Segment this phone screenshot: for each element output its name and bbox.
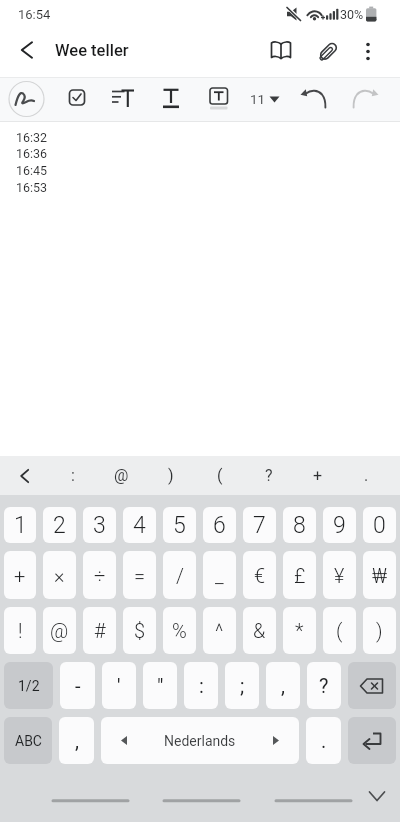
staticText: _ <box>215 564 224 587</box>
button[interactable] <box>10 36 46 72</box>
button[interactable]: 0 <box>363 507 396 543</box>
button[interactable] <box>311 34 347 70</box>
button[interactable]: ; <box>225 662 259 709</box>
staticText: , <box>281 674 285 697</box>
button[interactable] <box>105 81 143 118</box>
button[interactable]: ₩ <box>363 551 396 599</box>
button[interactable] <box>358 781 396 813</box>
button[interactable]: × <box>43 551 76 599</box>
button[interactable]: 3 <box>83 507 116 543</box>
button[interactable]: $ <box>123 607 156 654</box>
button[interactable]: ABC <box>4 717 52 764</box>
staticText: * <box>295 619 304 642</box>
staticText: & <box>253 619 266 642</box>
staticText: 11 <box>250 91 266 107</box>
button[interactable]: Nederlands <box>101 717 299 764</box>
button[interactable]: , <box>266 662 300 709</box>
button[interactable]: / <box>163 551 196 599</box>
button[interactable] <box>9 81 47 118</box>
staticText: ÷ <box>94 564 106 587</box>
button[interactable]: + <box>293 456 342 495</box>
button[interactable]: 8 <box>283 507 316 543</box>
button[interactable]: % <box>163 607 196 654</box>
button[interactable]: ! <box>4 607 36 654</box>
button[interactable] <box>245 81 283 118</box>
button[interactable] <box>1 456 49 495</box>
staticText: , <box>75 729 79 752</box>
staticText: ; <box>240 674 245 697</box>
staticText: ¥ <box>334 564 345 587</box>
staticText: @ <box>114 466 129 485</box>
button[interactable]: 5 <box>163 507 196 543</box>
button[interactable]: ( <box>195 456 244 495</box>
staticText: ) <box>376 619 383 642</box>
staticText: ^ <box>215 619 224 642</box>
staticText: 7 <box>253 512 266 539</box>
staticText: . <box>364 466 369 485</box>
button[interactable]: ' <box>102 662 136 709</box>
button[interactable]: ÷ <box>83 551 116 599</box>
button[interactable]: 9 <box>323 507 356 543</box>
button[interactable] <box>295 81 333 118</box>
staticText: 1/2 <box>18 678 40 694</box>
staticText: ' <box>117 674 121 697</box>
button[interactable]: ( <box>323 607 356 654</box>
button[interactable] <box>352 34 384 66</box>
button[interactable]: @ <box>43 607 76 654</box>
button[interactable]: 6 <box>203 507 236 543</box>
button[interactable]: 7 <box>243 507 276 543</box>
button[interactable]: ? <box>307 662 341 709</box>
staticText: ) <box>168 466 174 485</box>
staticText: 1 <box>14 512 27 539</box>
button[interactable]: ? <box>244 456 293 495</box>
button[interactable]: 2 <box>43 507 76 543</box>
staticText: 9 <box>333 512 346 539</box>
staticText: ( <box>336 619 343 642</box>
button[interactable]: & <box>243 607 276 654</box>
staticText: 16:32 16:36 16:45 16:53 <box>16 130 48 195</box>
staticText: Nederlands <box>164 733 236 749</box>
button[interactable]: £ <box>283 551 316 599</box>
button[interactable]: # <box>83 607 116 654</box>
staticText: ₩ <box>372 564 388 587</box>
button[interactable]: 1 <box>4 507 36 543</box>
button[interactable]: 4 <box>123 507 156 543</box>
button[interactable] <box>59 81 97 118</box>
staticText: × <box>54 564 65 587</box>
button[interactable]: : <box>49 456 97 495</box>
staticText: ? <box>265 466 273 485</box>
staticText: $ <box>134 619 146 642</box>
button[interactable]: ) <box>363 607 396 654</box>
button[interactable]: _ <box>203 551 236 599</box>
button[interactable]: € <box>243 551 276 599</box>
button[interactable]: * <box>283 607 316 654</box>
button[interactable] <box>348 717 396 764</box>
button[interactable] <box>264 34 300 70</box>
button[interactable]: " <box>143 662 177 709</box>
staticText: + <box>14 564 26 587</box>
button[interactable]: ^ <box>203 607 236 654</box>
staticText: - <box>75 674 81 697</box>
button[interactable]: . <box>342 456 391 495</box>
button[interactable]: @ <box>97 456 146 495</box>
button[interactable]: ¥ <box>323 551 356 599</box>
button[interactable] <box>345 81 383 118</box>
button[interactable]: 1/2 <box>4 662 53 709</box>
button[interactable]: ) <box>146 456 195 495</box>
button[interactable]: . <box>306 717 341 764</box>
staticText: : <box>71 466 75 485</box>
staticText: : <box>199 674 204 697</box>
staticText: 2 <box>53 512 66 539</box>
button[interactable]: - <box>60 662 95 709</box>
button[interactable]: , <box>59 717 94 764</box>
button[interactable] <box>201 81 239 118</box>
button[interactable]: : <box>184 662 218 709</box>
button[interactable]: = <box>123 551 156 599</box>
button[interactable]: + <box>4 551 36 599</box>
staticText: @ <box>50 619 69 642</box>
staticText: Wee teller <box>55 41 129 60</box>
staticText: 5 <box>173 512 186 539</box>
button[interactable] <box>348 662 396 709</box>
staticText: + <box>313 466 323 485</box>
button[interactable] <box>153 81 191 118</box>
